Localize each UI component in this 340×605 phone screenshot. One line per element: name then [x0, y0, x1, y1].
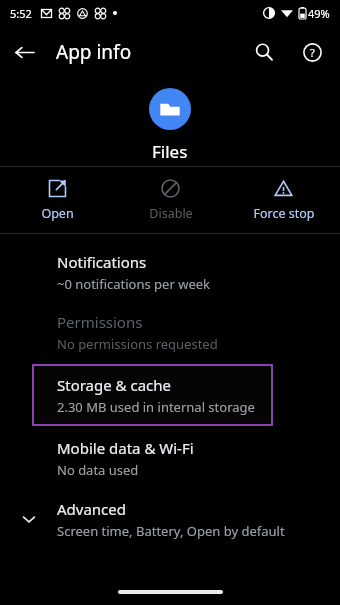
- staticText: 2.30 MB used in internal storage: [57, 398, 255, 416]
- button[interactable]: Notifications: [0, 242, 340, 302]
- button[interactable]: Disable: [114, 167, 227, 233]
- staticText: Disable: [149, 205, 193, 222]
- staticText: Storage & cache: [57, 375, 172, 395]
- button[interactable]: Force stop: [227, 167, 340, 233]
- staticText: Mobile data & Wi-Fi: [57, 438, 194, 458]
- staticText: Force stop: [253, 205, 315, 222]
- staticText: Open: [41, 205, 74, 222]
- staticText: Screen time, Battery, Open by default: [57, 522, 285, 540]
- button[interactable]: Permissions: [0, 302, 340, 362]
- staticText: ?: [310, 45, 315, 60]
- staticText: Notifications: [57, 252, 147, 272]
- staticText: App info: [56, 39, 132, 65]
- button[interactable]: Storage & cache: [33, 365, 272, 425]
- staticText: Advanced: [57, 499, 127, 519]
- staticText: Files: [152, 140, 188, 163]
- staticText: 49%: [308, 6, 330, 21]
- staticText: No permissions requested: [57, 335, 218, 353]
- button[interactable]: Search: [240, 28, 288, 76]
- button[interactable]: Advanced: [0, 488, 340, 550]
- staticText: ~0 notifications per week: [57, 275, 211, 293]
- button[interactable]: Open: [0, 167, 114, 233]
- button[interactable]: Mobile data & Wi-Fi: [0, 428, 340, 488]
- button[interactable]: Back: [0, 28, 48, 76]
- button[interactable]: Help: [288, 28, 336, 76]
- staticText: 5:52: [10, 6, 32, 21]
- staticText: No data used: [57, 461, 139, 479]
- staticText: Permissions: [57, 312, 143, 332]
